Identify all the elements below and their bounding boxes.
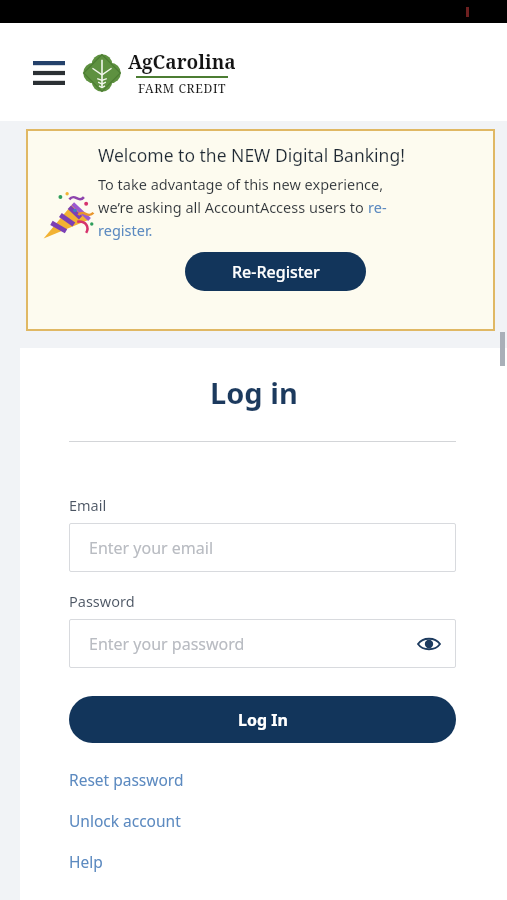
button[interactable]: register.: [98, 220, 153, 240]
staticText: Log in: [210, 373, 298, 412]
button[interactable]: Reset password: [20, 769, 507, 790]
staticText: FARM CREDIT: [138, 80, 227, 96]
button[interactable]: Re-Register: [185, 252, 366, 291]
button[interactable]: Enter your email: [69, 523, 456, 572]
staticText: Log In: [238, 709, 288, 731]
button[interactable]: Open navigation menu: [28, 52, 70, 94]
staticText: Reset password: [69, 769, 184, 790]
staticText: Help: [69, 851, 103, 872]
staticText: Email: [69, 495, 107, 515]
button[interactable]: Enter your password: [69, 619, 456, 668]
button[interactable]: Log In: [69, 696, 456, 743]
staticText: Re-Register: [232, 261, 320, 283]
button[interactable]: Show password: [416, 631, 442, 657]
staticText: Password: [69, 591, 135, 611]
button[interactable]: Unlock account: [20, 810, 507, 831]
staticText: re-: [368, 197, 387, 217]
staticText: Enter your password: [89, 633, 245, 655]
staticText: Welcome to the NEW Digital Banking!: [98, 143, 405, 167]
staticText: Enter your email: [89, 537, 214, 559]
button[interactable]: Help: [20, 851, 507, 872]
staticText: AgCarolina: [128, 49, 236, 75]
staticText: To take advantage of this new experience…: [98, 174, 384, 194]
staticText: we’re asking all AccountAccess users to: [98, 197, 368, 217]
staticText: Unlock account: [69, 810, 181, 831]
